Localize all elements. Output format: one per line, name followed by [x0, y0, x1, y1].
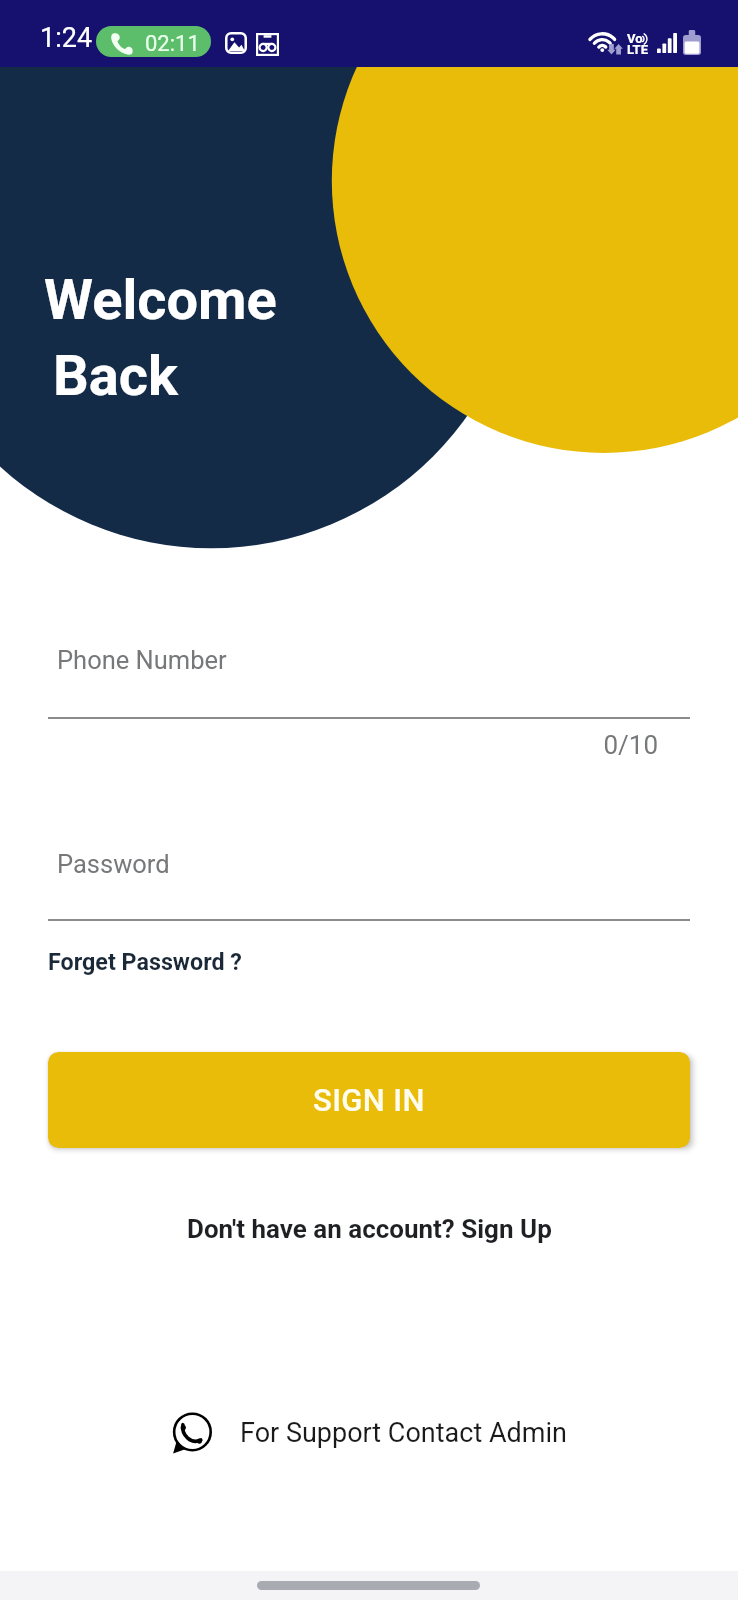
- staticText: 1:24: [40, 22, 93, 54]
- button[interactable]: Password field: [48, 825, 690, 920]
- staticText: SIGN IN: [313, 1082, 425, 1118]
- button[interactable]: SIGN IN: [48, 1052, 690, 1148]
- other: Voicemail: [256, 33, 279, 56]
- staticText: 02:11: [145, 31, 200, 57]
- button[interactable]: Phone Number field: [48, 620, 690, 720]
- staticText: Vo: [627, 31, 643, 46]
- button[interactable]: WhatsApp support: [0, 1412, 738, 1454]
- other: Mobile signal: [657, 33, 677, 53]
- staticText: Forget Password ?: [48, 948, 242, 975]
- staticText: 0/10: [48, 730, 658, 760]
- staticText: Phone Number: [57, 645, 227, 675]
- other: WhatsApp support: [171, 1412, 213, 1454]
- staticText: For Support Contact Admin: [240, 1417, 567, 1449]
- button[interactable]: Ongoing call 02:11: [96, 26, 211, 57]
- other: Battery: [683, 30, 701, 55]
- staticText: LTE: [627, 42, 648, 57]
- staticText: Welcome: [44, 267, 277, 333]
- other: VoLTE: [627, 32, 651, 55]
- other: Wi-Fi: [588, 31, 622, 54]
- staticText: Password: [57, 849, 170, 879]
- button[interactable]: Don't have an account? Sign Up: [187, 1214, 552, 1244]
- staticText: Don't have an account? Sign Up: [187, 1214, 552, 1244]
- staticText: Back: [53, 343, 178, 409]
- other: Screenshot: [225, 32, 247, 54]
- button[interactable]: Forget Password ?: [48, 948, 242, 975]
